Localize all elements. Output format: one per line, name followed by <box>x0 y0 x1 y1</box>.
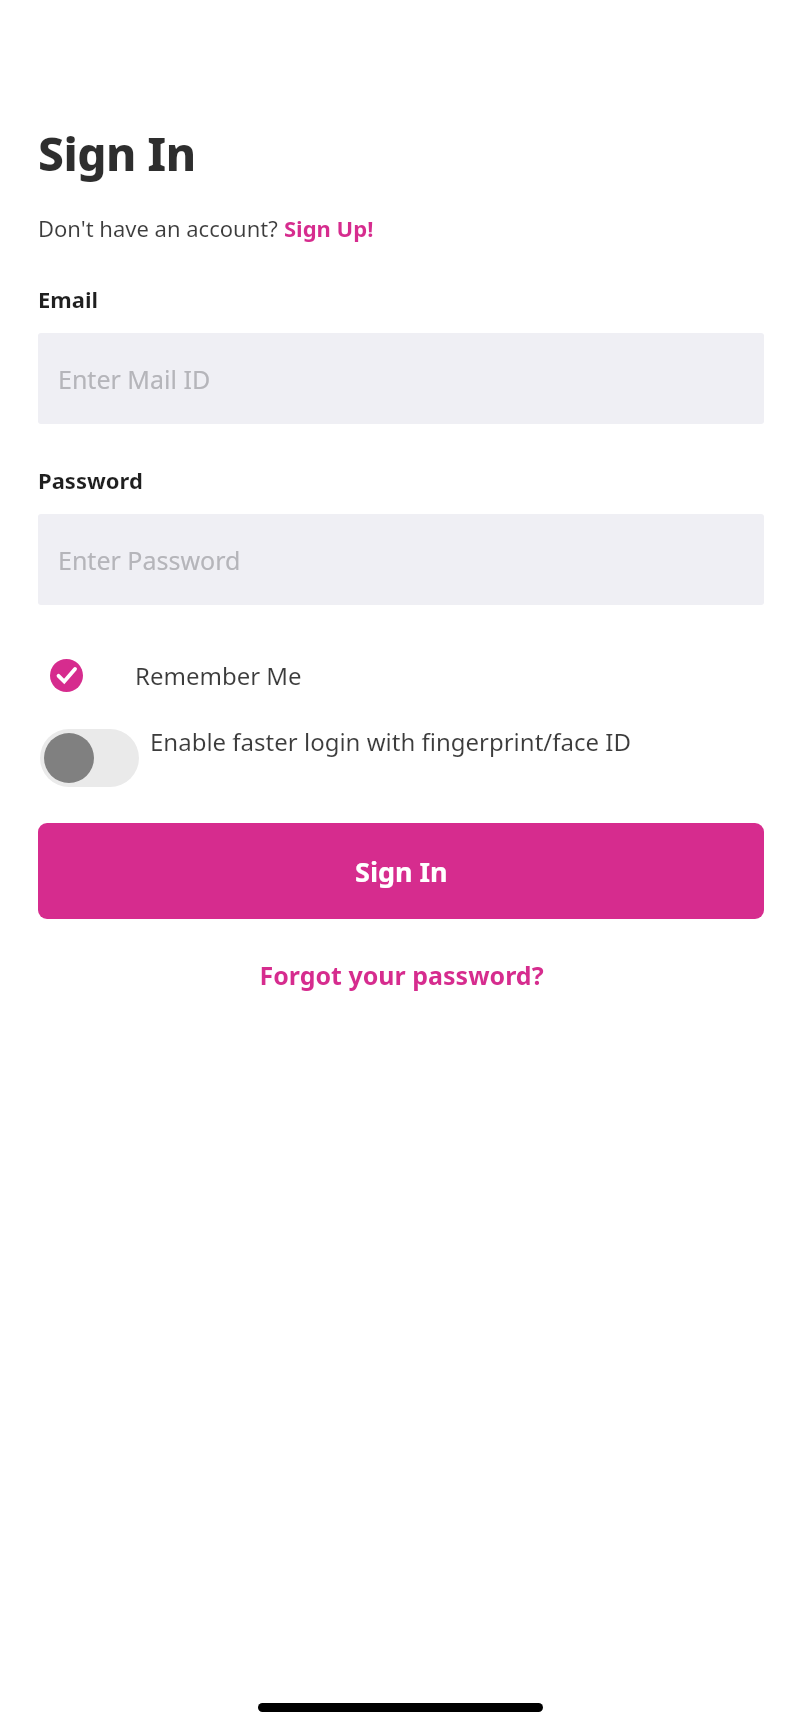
button[interactable]: Enable biometric login <box>38 725 764 783</box>
button[interactable]: Sign In <box>38 823 764 919</box>
staticText: Enter Password <box>58 543 241 577</box>
button[interactable]: Enter Password <box>38 514 764 605</box>
staticText: Password <box>38 465 143 495</box>
staticText: Don't have an account? <box>38 213 284 243</box>
button[interactable]: Sign Up! <box>284 213 374 243</box>
button[interactable]: Forgot your password? <box>38 958 764 992</box>
staticText: Remember Me <box>135 659 302 692</box>
staticText: Sign Up! <box>284 213 374 243</box>
button[interactable]: Enter Mail ID <box>38 333 764 424</box>
staticText: Enter Mail ID <box>58 362 211 396</box>
staticText: Email <box>38 284 99 314</box>
other: Enable biometric login <box>40 729 139 787</box>
staticText: Sign In <box>355 853 448 890</box>
staticText: Enable faster login with fingerprint/fac… <box>150 725 631 758</box>
staticText: Forgot your password? <box>259 958 544 992</box>
staticText: Sign In <box>38 122 196 185</box>
button[interactable]: Remember Me <box>38 659 764 692</box>
